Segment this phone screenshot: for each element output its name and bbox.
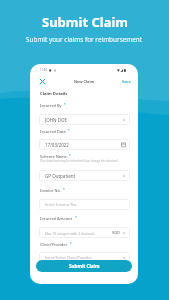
staticText: Clinic/Provider xyxy=(40,242,68,247)
staticText: 11:00 xyxy=(40,68,47,72)
staticText: * xyxy=(63,188,65,192)
staticText: Enter Invoice No. xyxy=(45,202,126,207)
button[interactable]: JOHN DOE xyxy=(39,114,130,125)
button[interactable]: GP Outpatient xyxy=(39,170,130,181)
staticText: Submit Claim xyxy=(69,263,100,269)
staticText: Incurred Amount xyxy=(40,216,73,221)
staticText: GP Outpatient xyxy=(45,173,122,179)
staticText: Claim Details xyxy=(40,91,68,97)
staticText: Scheme Name xyxy=(40,154,67,159)
staticText: * xyxy=(70,242,72,246)
button[interactable]: Submit Claim xyxy=(36,260,132,272)
staticText: * xyxy=(64,103,66,107)
staticText: Incurred Date xyxy=(40,129,66,134)
button[interactable]: Enter Invoice No. xyxy=(39,199,130,210)
staticText: Save xyxy=(122,79,131,84)
button[interactable]: Enter/Select Clinic/Provider xyxy=(39,252,130,263)
button[interactable]: Max 10 integers with 2 decimals xyxy=(39,227,130,238)
button[interactable]: Close xyxy=(37,76,47,86)
staticText: Enter/Select Clinic/Provider xyxy=(45,255,122,260)
staticText: * xyxy=(68,129,70,133)
staticText: New Claim xyxy=(74,79,95,84)
staticText: JOHN DOE xyxy=(45,117,122,123)
staticText: * xyxy=(75,216,77,220)
staticText: Submit your claims for reimbursement xyxy=(26,35,143,44)
staticText: * xyxy=(69,154,71,158)
staticText: Invoice No. xyxy=(40,188,61,193)
button[interactable]: 17/03/2022 xyxy=(39,139,130,150)
button[interactable]: Save xyxy=(122,79,131,84)
staticText: (The claim form may be refreshed if you … xyxy=(40,159,118,163)
staticText: Submit Claim xyxy=(42,13,128,31)
staticText: SGD xyxy=(112,230,120,235)
staticText: 17/03/2022 xyxy=(45,142,121,148)
staticText: Max 10 integers with 2 decimals xyxy=(45,231,112,235)
staticText: Incurred By xyxy=(40,103,62,108)
